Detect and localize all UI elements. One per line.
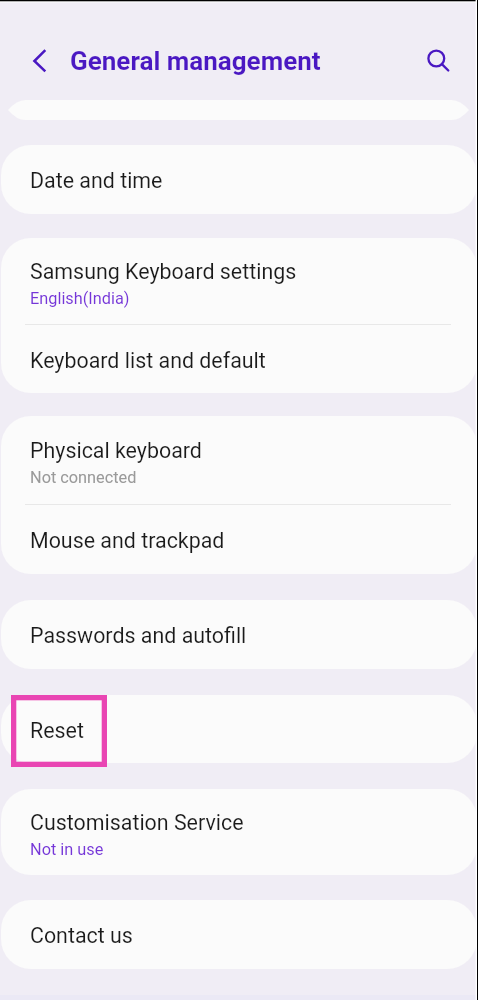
button[interactable]: Passwords and autofill — [1, 600, 477, 669]
staticText: Not in use — [30, 840, 104, 859]
button[interactable]: Date and time — [1, 145, 477, 214]
staticText: Reset — [30, 718, 84, 743]
staticText: Physical keyboard — [30, 438, 202, 463]
staticText: Keyboard list and default — [30, 348, 266, 373]
staticText: English(India) — [30, 289, 130, 308]
staticText: General management — [70, 46, 321, 76]
button[interactable]: Samsung Keyboard settings — [1, 238, 477, 324]
staticText: Contact us — [30, 923, 133, 948]
button[interactable]: Navigate up — [16, 39, 60, 83]
button[interactable]: Customisation Service — [1, 789, 477, 875]
button[interactable]: Reset — [1, 695, 477, 763]
staticText: Date and time — [30, 168, 163, 193]
button[interactable]: Mouse and trackpad — [1, 505, 477, 574]
button[interactable]: Physical keyboard — [1, 416, 477, 504]
staticText: Samsung Keyboard settings — [30, 259, 297, 284]
staticText: Customisation Service — [30, 810, 244, 835]
button[interactable]: Search — [418, 40, 462, 84]
staticText: Mouse and trackpad — [30, 528, 225, 553]
button[interactable]: Keyboard list and default — [1, 325, 477, 393]
button[interactable]: Contact us — [1, 900, 477, 969]
staticText: Not connected — [30, 468, 137, 487]
staticText: Passwords and autofill — [30, 623, 247, 648]
